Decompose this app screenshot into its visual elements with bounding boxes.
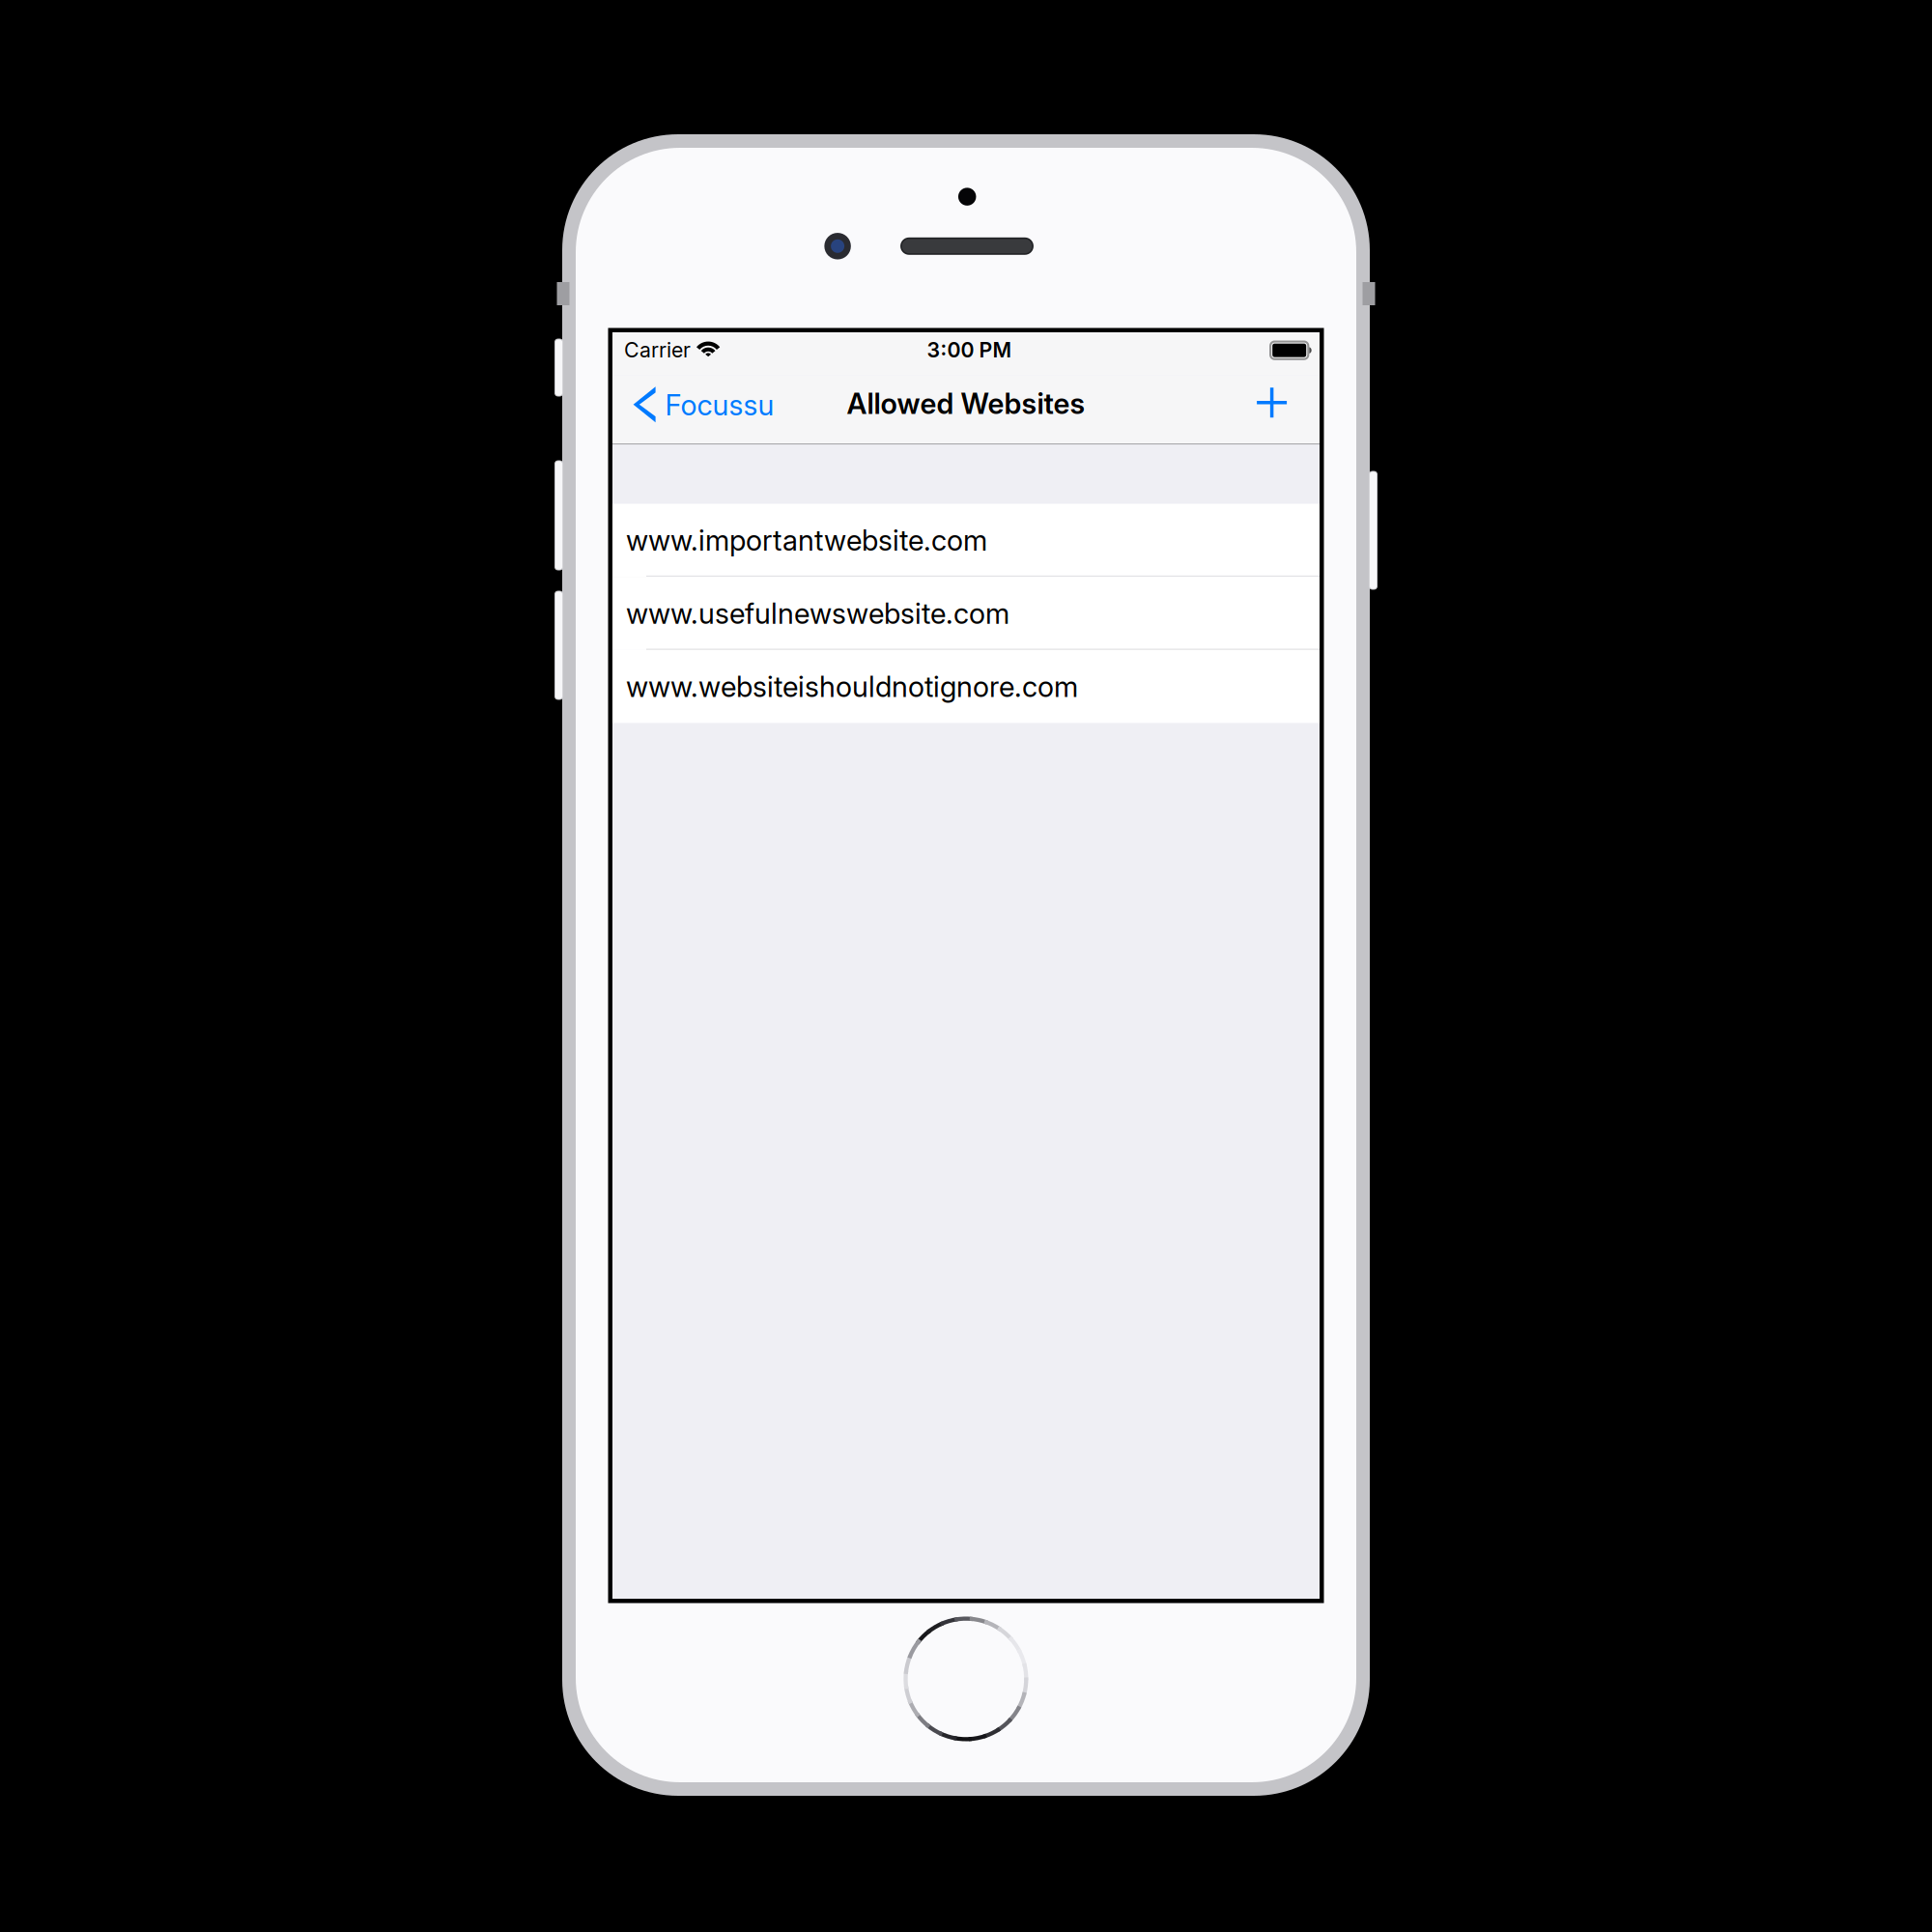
staticText: 3:00 PM [927,337,1012,362]
staticText: Allowed Websites [847,386,1085,421]
staticText: www.usefulnewswebsite.com [626,596,1009,631]
button[interactable]: www.usefulnewswebsite.com [612,577,1320,650]
staticText: Carrier [624,337,691,362]
button[interactable]: Focussu [612,375,786,443]
button[interactable]: www.websiteishouldnotignore.com [612,650,1320,723]
staticText: Focussu [665,388,774,422]
button[interactable]: Add website [1241,375,1320,443]
staticText: www.websiteishouldnotignore.com [626,669,1078,704]
staticText: www.importantwebsite.com [626,523,987,557]
button[interactable]: www.importantwebsite.com [612,504,1320,577]
